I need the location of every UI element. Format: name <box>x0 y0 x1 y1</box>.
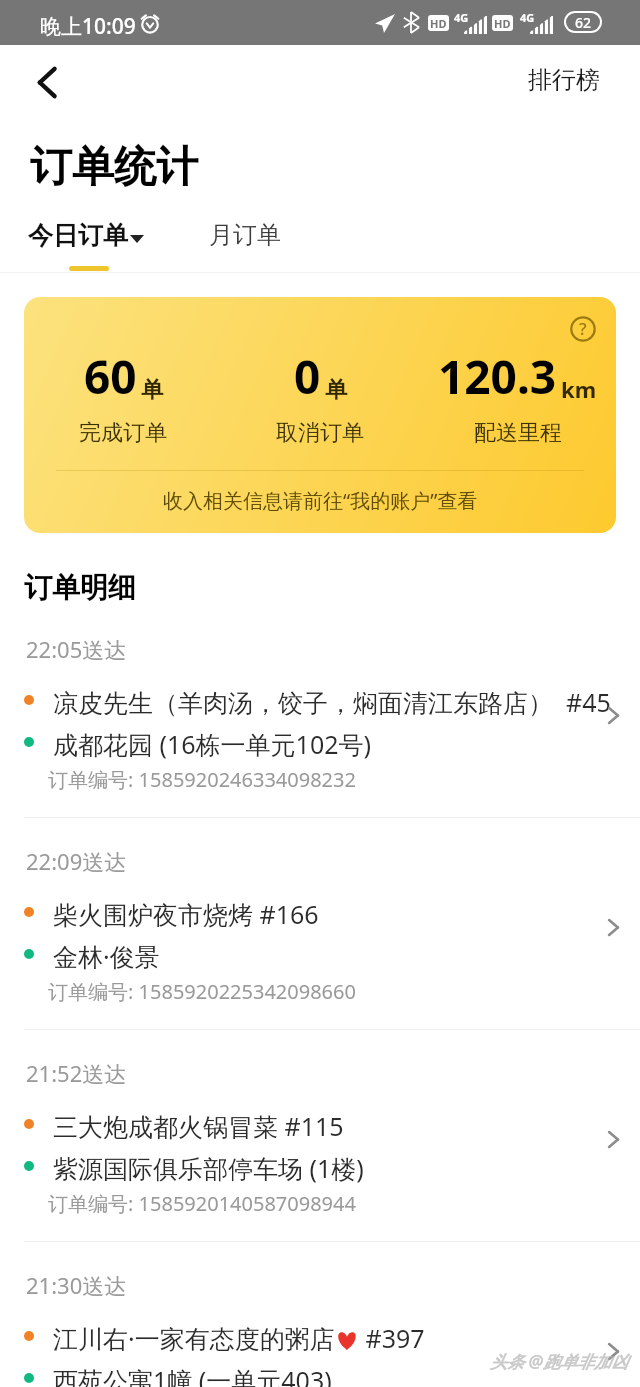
staticText: 头条 @跑单非加凶 <box>490 1350 628 1373</box>
button[interactable]: 22:09送达 <box>0 828 640 1040</box>
staticText: 三大炮成都火锅冒菜 #115 <box>53 1109 640 1143</box>
staticText: 单 <box>141 376 163 404</box>
staticText: 22:05送达 <box>26 634 127 664</box>
staticText: 4G <box>520 10 535 25</box>
staticText: 凉皮先生（羊肉汤，饺子，焖面清江东路店） #45 <box>53 685 640 719</box>
staticText: 订单编号: 1585920225342098660 <box>48 978 356 1005</box>
button[interactable]: Order detail <box>592 1117 636 1161</box>
staticText: 订单编号: 1585920140587098944 <box>48 1190 356 1217</box>
staticText: 订单统计 <box>30 141 198 194</box>
staticText: HD <box>494 16 511 31</box>
button[interactable]: 排行榜 <box>506 51 640 105</box>
staticText: 取消订单 <box>276 419 364 447</box>
staticText: km <box>561 374 597 404</box>
staticText: 60 <box>84 345 137 408</box>
staticText: ? <box>579 317 587 340</box>
staticText: 成都花园 (16栋一单元102号) <box>53 727 640 761</box>
button[interactable]: Order detail <box>592 1329 636 1373</box>
button[interactable]: Order detail <box>592 905 636 949</box>
staticText: 21:52送达 <box>26 1058 127 1088</box>
staticText: 排行榜 <box>528 65 600 95</box>
staticText: HD <box>430 16 447 31</box>
staticText: 订单编号: 1585920246334098232 <box>48 766 356 793</box>
staticText: 订单明细 <box>24 570 136 605</box>
staticText: #397 <box>359 1321 425 1355</box>
button[interactable]: Help <box>24 297 616 533</box>
staticText: 单 <box>325 376 347 404</box>
button[interactable]: 21:52送达 <box>0 1040 640 1252</box>
staticText: 收入相关信息请前往“我的账户”查看 <box>163 487 478 514</box>
staticText: 21:30送达 <box>26 1270 127 1300</box>
button[interactable]: Help <box>564 310 602 348</box>
staticText: 月订单 <box>209 220 281 250</box>
button[interactable]: Back <box>22 57 72 107</box>
staticText: 4G <box>454 10 469 25</box>
staticText: 22:09送达 <box>26 846 127 876</box>
staticText: 0 <box>294 345 321 408</box>
staticText: 西苑公寓1幢 (一单元403) <box>53 1363 640 1387</box>
staticText: 柴火围炉夜市烧烤 #166 <box>53 897 640 931</box>
staticText: 120.3 <box>438 345 557 408</box>
button[interactable]: Order detail <box>592 693 636 737</box>
button[interactable]: 21:30送达 <box>0 1252 640 1387</box>
staticText: 紫源国际俱乐部停车场 (1楼) <box>53 1151 640 1185</box>
button[interactable]: 22:05送达 <box>0 616 640 828</box>
staticText: 62 <box>575 13 592 31</box>
staticText: 晚上10:09 <box>40 12 136 41</box>
staticText: 今日订单 <box>28 220 128 251</box>
button[interactable]: 今日订单 <box>14 218 158 249</box>
staticText: 江川右·一家有态度的粥店 <box>53 1321 335 1355</box>
button[interactable]: 月订单 <box>195 218 295 248</box>
staticText: 完成订单 <box>79 419 167 447</box>
staticText: 配送里程 <box>474 419 562 447</box>
staticText: 金林·俊景 <box>53 939 640 973</box>
